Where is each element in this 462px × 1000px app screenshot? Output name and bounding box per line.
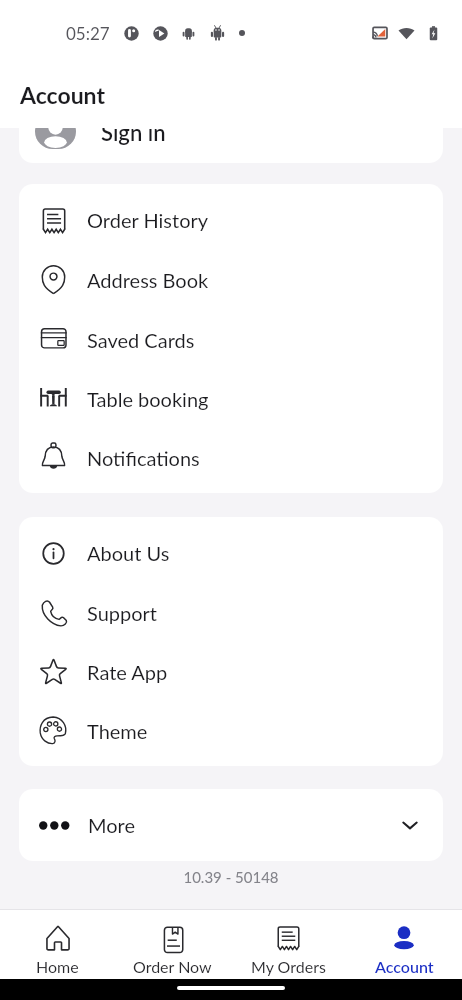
staticText: 10.39 - 50148 <box>0 868 462 886</box>
button[interactable]: About Us <box>19 523 443 583</box>
button[interactable]: Table booking <box>19 369 443 428</box>
staticText: More <box>88 813 136 837</box>
staticText: Support <box>87 601 158 625</box>
staticText: My Orders <box>251 957 326 976</box>
staticText: Order History <box>87 208 209 232</box>
staticText: Notifications <box>87 446 200 470</box>
staticText: Address Book <box>87 268 209 292</box>
button[interactable]: Order Now <box>115 910 230 979</box>
button[interactable]: Saved Cards <box>19 310 443 369</box>
staticText: Table booking <box>87 387 209 411</box>
staticText: Home <box>36 957 79 976</box>
staticText: Account <box>20 81 105 109</box>
button[interactable]: Address Book <box>19 250 443 310</box>
button[interactable]: More <box>19 789 443 861</box>
button[interactable]: Support <box>19 583 443 642</box>
staticText: Order Now <box>133 957 212 976</box>
button[interactable]: Home <box>0 910 115 979</box>
button[interactable]: Account <box>346 910 462 979</box>
button[interactable]: Rate App <box>19 642 443 701</box>
button[interactable]: Sign in <box>19 128 443 163</box>
staticText: Theme <box>87 719 148 743</box>
button[interactable]: My Orders <box>230 910 346 979</box>
staticText: 05:27 <box>66 23 110 43</box>
staticText: Saved Cards <box>87 328 195 352</box>
button[interactable]: Theme <box>19 701 443 760</box>
button[interactable]: Notifications <box>19 428 443 487</box>
staticText: Rate App <box>87 660 168 684</box>
staticText: Account <box>375 957 434 976</box>
staticText: About Us <box>87 541 170 565</box>
staticText: Sign in <box>101 128 166 145</box>
button[interactable]: Order History <box>19 190 443 250</box>
